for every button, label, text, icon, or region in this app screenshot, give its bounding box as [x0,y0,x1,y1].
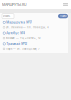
button[interactable]: Menu [63,3,68,6]
button[interactable]: Трамвай №12 [3,42,67,50]
staticText: Трамвай №12 [6,42,27,46]
staticText: Маршрутка №17 [6,20,32,24]
staticText: Найти [60,15,66,17]
button[interactable]: Маршрутка №17 [3,21,67,29]
staticText: МАРШРУТЫ.RU [2,3,27,7]
button[interactable]: МАРШРУТЫ.RU [2,3,27,7]
staticText: Автобус №4 [6,31,25,35]
staticText: Искать [3,15,10,17]
staticText: Парк — ул. Заводская, 7 [6,47,40,50]
button[interactable]: Автобус №4 [3,31,67,40]
staticText: ул. Ленина — пл. Победы, 4 [6,26,49,29]
button[interactable]: Найти [58,14,68,18]
staticText: Вокзал — ТЦ «Сити», 12 [6,36,41,40]
button[interactable]: Искать [2,14,14,18]
